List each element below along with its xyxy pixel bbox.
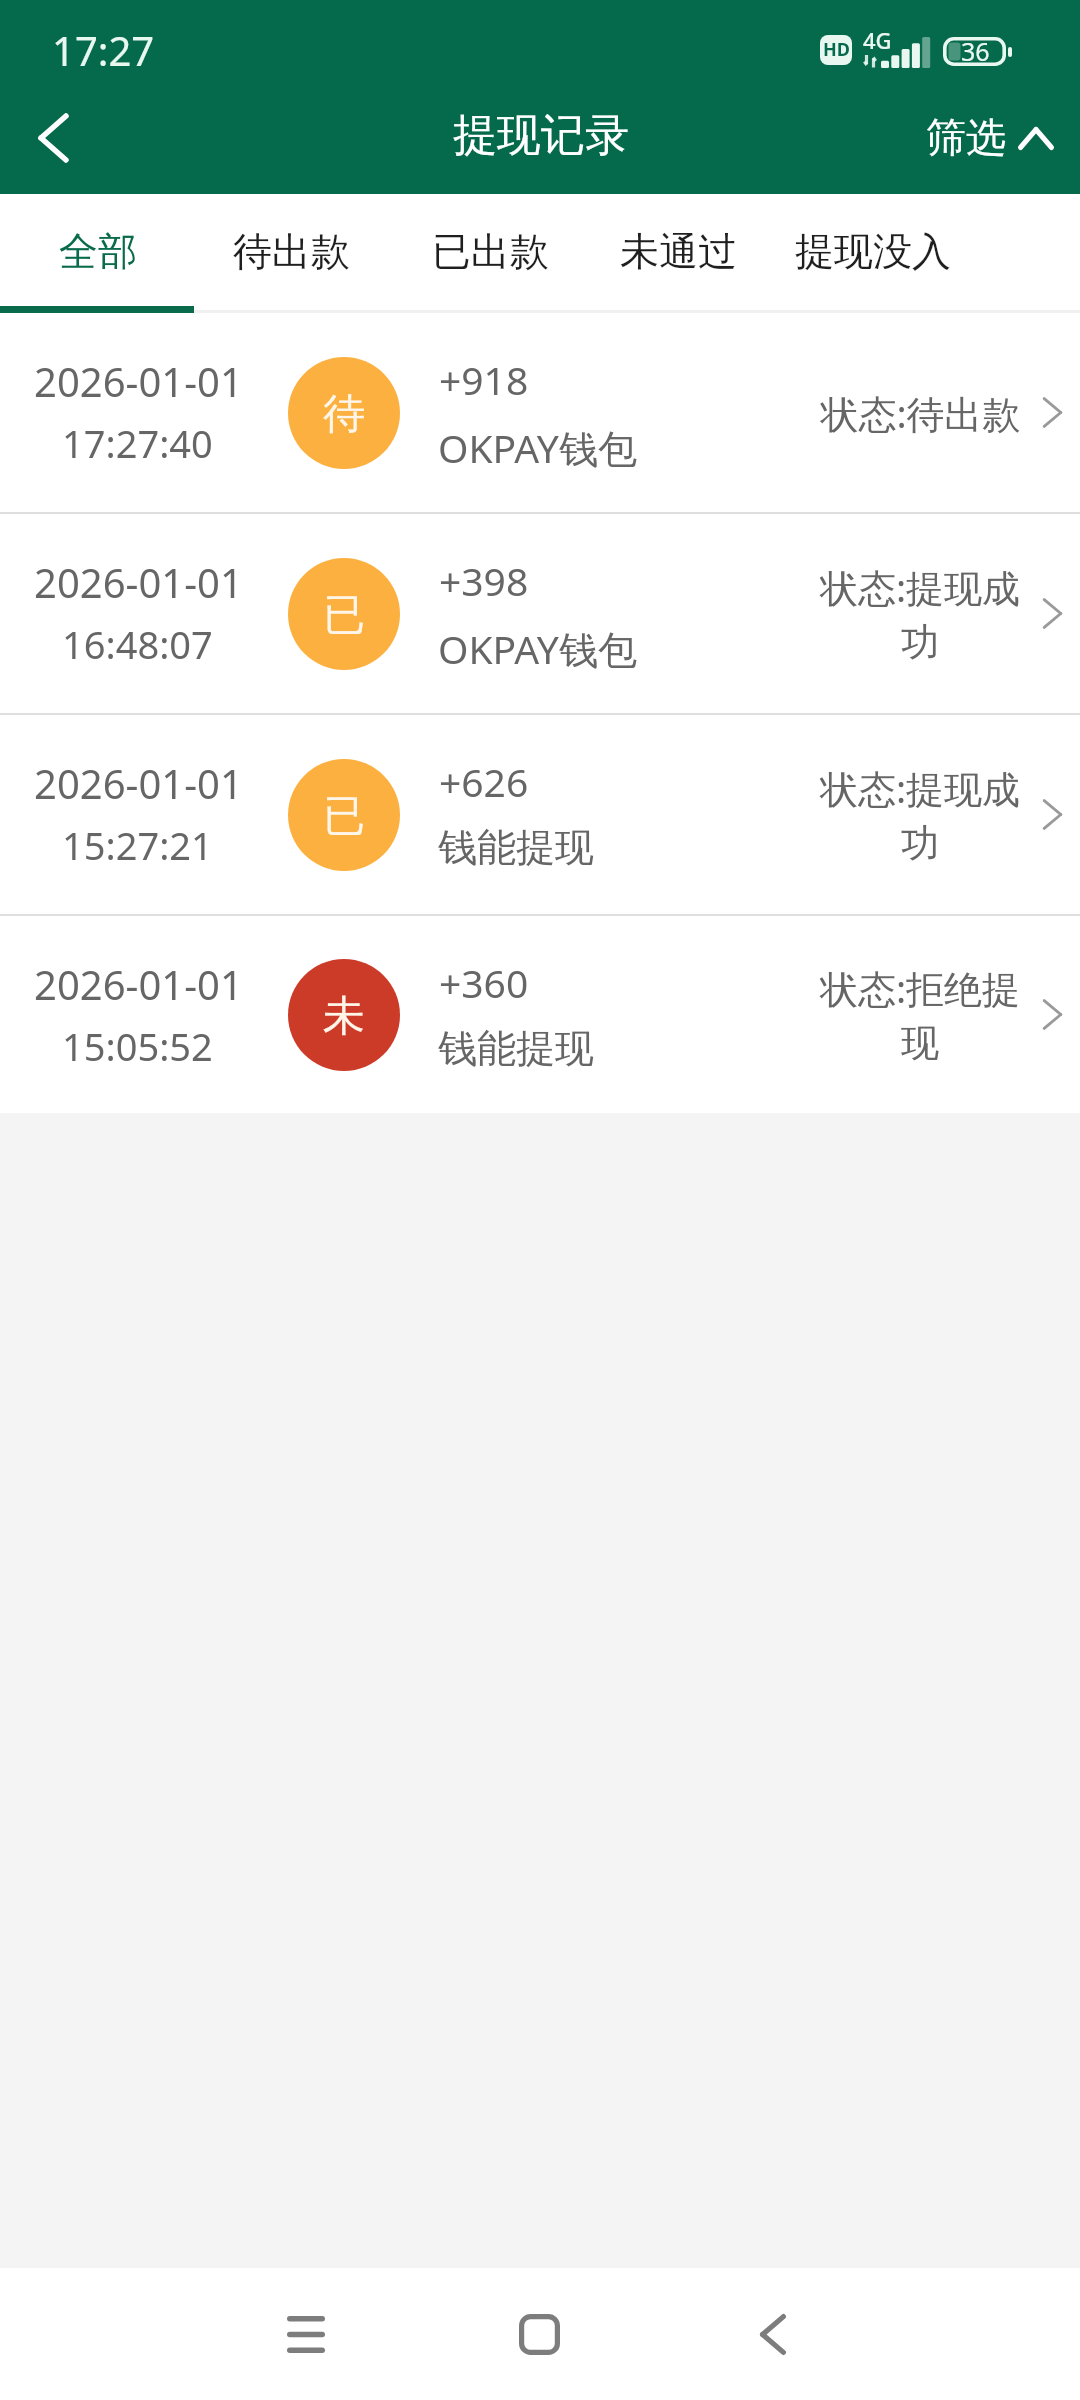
staticText: 状态:拒绝提现 [813, 962, 1027, 1067]
staticText: 未通过 [620, 227, 737, 276]
staticText: +918 [439, 353, 529, 406]
staticText: 已 [323, 589, 365, 642]
button[interactable]: 筛选 [906, 100, 1072, 176]
button[interactable]: 未通过 [571, 194, 786, 313]
staticText: 2026-01-01 [34, 756, 243, 810]
staticText: 筛选 [926, 112, 1006, 162]
staticText: 提现记录 [453, 108, 629, 163]
staticText: 未 [323, 990, 365, 1043]
staticText: 17:27 [52, 23, 155, 77]
staticText: 待出款 [233, 227, 350, 276]
staticText: OKPAY钱包 [438, 421, 637, 474]
staticText: 钱能提现 [438, 1024, 594, 1073]
staticText: 已 [323, 790, 365, 843]
staticText: 16:48:07 [62, 618, 213, 670]
button[interactable]: Back [0, 86, 106, 192]
staticText: 钱能提现 [438, 823, 594, 872]
button[interactable]: Home [449, 2284, 629, 2384]
staticText: +398 [439, 554, 529, 607]
button[interactable]: 2026-01-01 [0, 916, 1080, 1113]
staticText: 2026-01-01 [34, 354, 243, 408]
staticText: HD [823, 37, 850, 62]
button[interactable]: Back [683, 2284, 863, 2384]
staticText: 2026-01-01 [34, 957, 243, 1011]
staticText: 已出款 [432, 227, 549, 276]
staticText: 4G [863, 25, 892, 55]
button[interactable]: 全部 [0, 194, 205, 313]
staticText: 全部 [59, 227, 137, 276]
staticText: +626 [439, 755, 529, 808]
staticText: 2026-01-01 [34, 555, 243, 609]
button[interactable]: 2026-01-01 [0, 715, 1080, 914]
staticText: 状态:待出款 [820, 387, 1021, 439]
staticText: OKPAY钱包 [438, 622, 637, 675]
staticText: +360 [439, 956, 529, 1009]
button[interactable]: 2026-01-01 [0, 313, 1080, 512]
staticText: 提现没入 [795, 227, 951, 276]
button[interactable]: 待出款 [184, 194, 399, 313]
staticText: 状态:提现成功 [813, 762, 1027, 867]
staticText: 待 [323, 388, 365, 441]
staticText: 15:27:21 [62, 819, 213, 871]
staticText: 36 [961, 34, 990, 63]
button[interactable]: 提现没入 [765, 194, 980, 313]
button[interactable]: 2026-01-01 [0, 514, 1080, 713]
button[interactable]: 已出款 [383, 194, 598, 313]
staticText: 17:27:40 [62, 417, 213, 469]
button[interactable]: Recent apps [216, 2284, 396, 2384]
staticText: 15:05:52 [62, 1020, 213, 1072]
staticText: 状态:提现成功 [813, 561, 1027, 666]
